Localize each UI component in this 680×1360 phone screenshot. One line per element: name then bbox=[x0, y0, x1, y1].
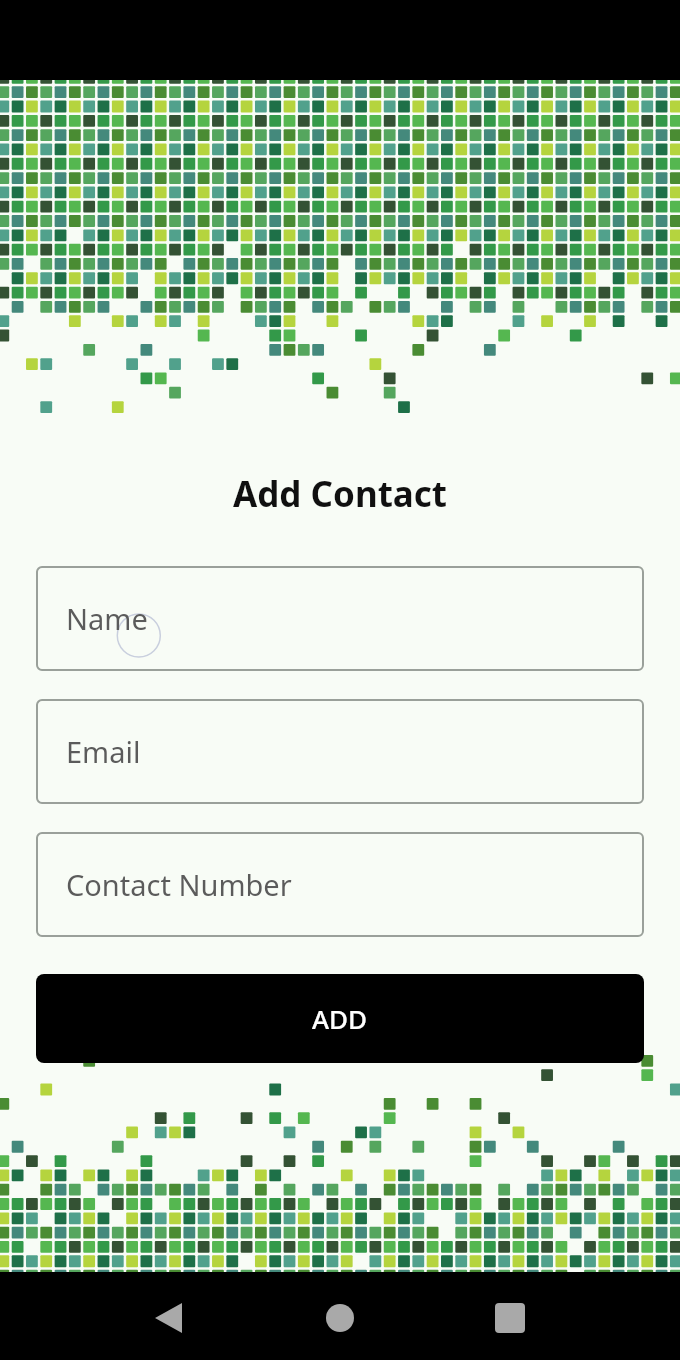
button[interactable]: ADD bbox=[36, 974, 644, 1063]
staticText: ADD bbox=[312, 1001, 368, 1036]
staticText: Email bbox=[66, 732, 141, 771]
button[interactable]: Home bbox=[310, 1290, 370, 1350]
button[interactable]: Recents bbox=[480, 1290, 540, 1350]
button[interactable]: Name bbox=[36, 566, 644, 671]
staticText: Name bbox=[66, 599, 148, 638]
button[interactable]: Email bbox=[36, 699, 644, 804]
button[interactable]: Contact Number bbox=[36, 832, 644, 937]
staticText: Contact Number bbox=[66, 865, 292, 904]
button[interactable]: Back bbox=[138, 1290, 198, 1350]
staticText: Add Contact bbox=[233, 470, 448, 518]
